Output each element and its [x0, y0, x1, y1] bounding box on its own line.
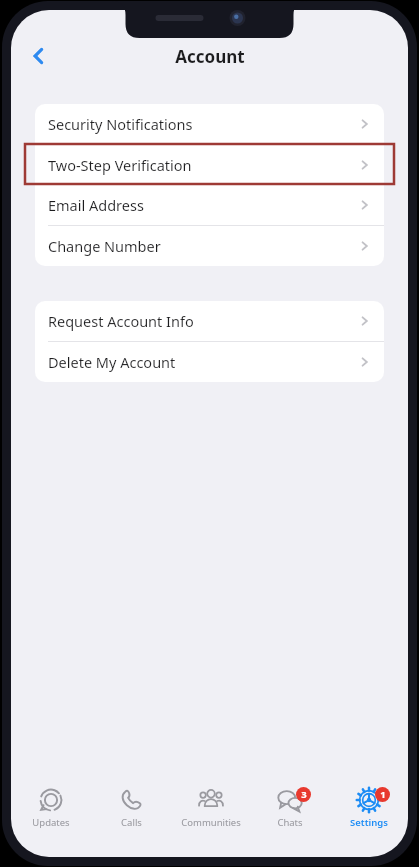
button[interactable]: Security Notifications	[35, 104, 384, 145]
button[interactable]: Calls	[91, 781, 171, 839]
button[interactable]: Delete My Account	[35, 342, 384, 382]
staticText: Email Address	[48, 195, 357, 215]
button[interactable]: Request Account Info	[35, 301, 384, 342]
staticText: Calls	[121, 816, 142, 829]
button[interactable]: Back	[19, 38, 59, 74]
staticText: 1	[380, 788, 386, 801]
button[interactable]: Updates	[11, 781, 91, 839]
staticText: Chats	[277, 816, 303, 829]
staticText: Request Account Info	[48, 311, 357, 331]
staticText: Change Number	[48, 236, 357, 256]
button[interactable]: Two-Step Verification	[35, 145, 384, 185]
staticText: Two-Step Verification	[48, 155, 357, 175]
staticText: Security Notifications	[48, 114, 357, 134]
button[interactable]: 3	[250, 781, 329, 839]
staticText: Settings	[350, 816, 388, 829]
staticText: 3	[301, 788, 307, 801]
button[interactable]: Communities	[171, 781, 250, 839]
button[interactable]: Change Number	[35, 226, 384, 266]
button[interactable]: 1	[329, 781, 408, 839]
staticText: Communities	[181, 816, 241, 829]
button[interactable]: Email Address	[35, 185, 384, 226]
staticText: Updates	[32, 816, 70, 829]
staticText: Delete My Account	[48, 352, 357, 372]
staticText: Account	[175, 45, 245, 68]
